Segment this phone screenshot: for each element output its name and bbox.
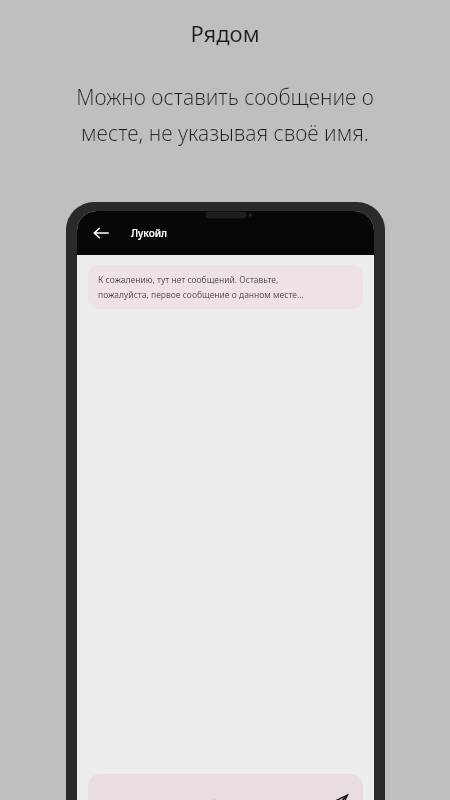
staticText: Лукойл xyxy=(131,226,168,240)
staticText: Рядом xyxy=(190,18,260,48)
button[interactable]: Back xyxy=(87,219,115,247)
button[interactable]: Send xyxy=(327,791,351,800)
staticText: Можно оставить сообщение о месте, не ука… xyxy=(76,83,374,147)
staticText: К сожалению, тут нет сообщений. Оставьте… xyxy=(98,274,304,300)
button[interactable]: Написать анонимное сообщение… xyxy=(88,774,363,800)
button[interactable]: К сожалению, тут нет сообщений. Оставьте… xyxy=(88,265,363,309)
